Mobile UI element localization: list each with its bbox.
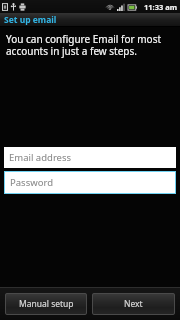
- staticText: Set up email: [4, 14, 57, 26]
- button[interactable]: Next: [92, 293, 175, 315]
- staticText: You can configure Email for most account…: [6, 32, 162, 58]
- staticText: Email address: [9, 151, 72, 164]
- button[interactable]: Email address: [4, 147, 176, 168]
- button[interactable]: Password: [5, 172, 175, 193]
- staticText: 11:33 am: [144, 2, 178, 12]
- staticText: Next: [124, 298, 143, 310]
- staticText: Password: [10, 176, 53, 189]
- staticText: Manual setup: [19, 298, 74, 310]
- button[interactable]: Manual setup: [5, 293, 87, 315]
